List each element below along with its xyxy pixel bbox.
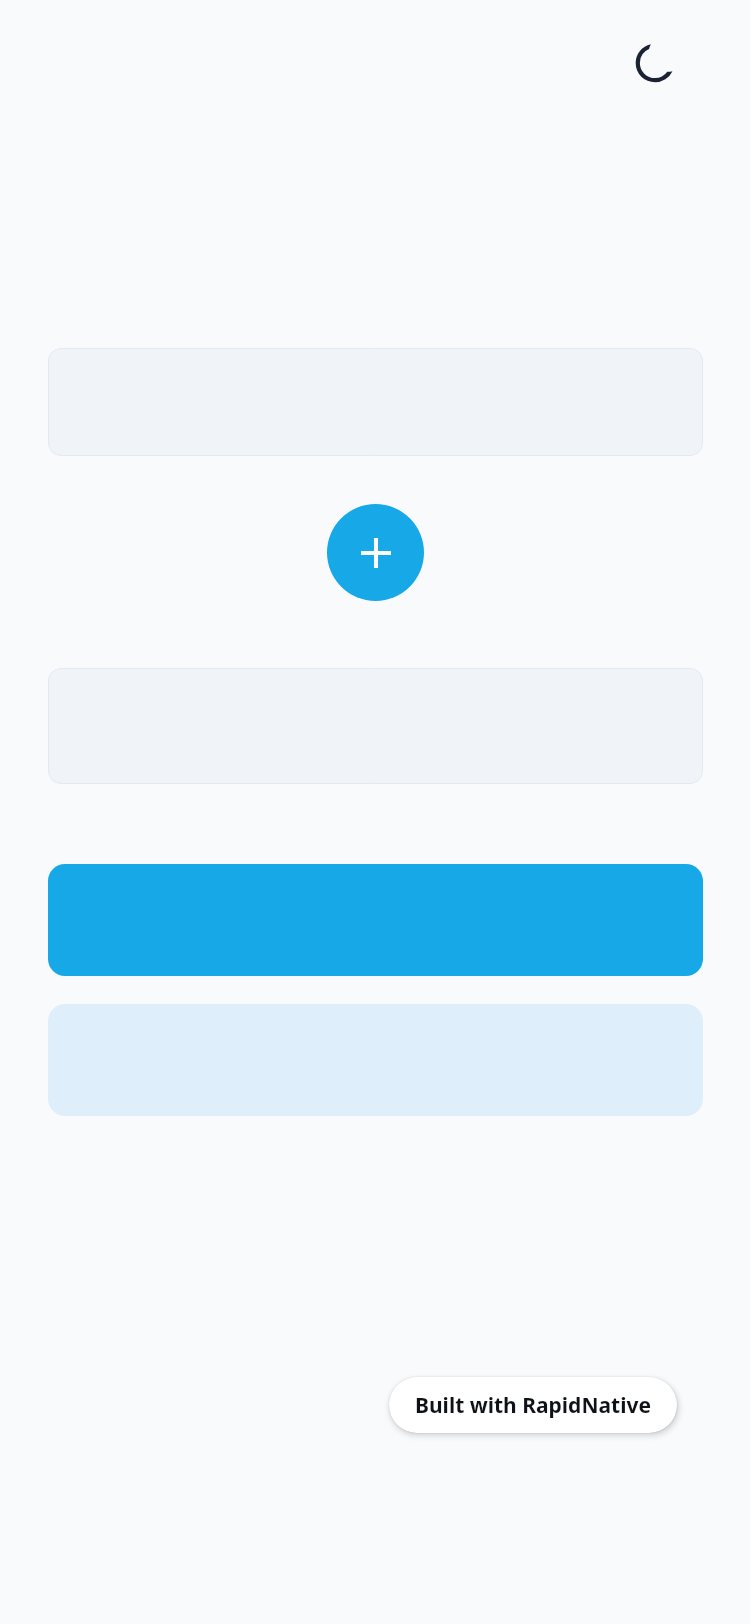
button[interactable]: Toggle dark mode (618, 26, 692, 100)
button[interactable]: Built with RapidNative (389, 1377, 677, 1433)
button[interactable] (48, 864, 703, 976)
button[interactable]: Add (327, 504, 424, 601)
staticText: Built with RapidNative (415, 1391, 651, 1420)
